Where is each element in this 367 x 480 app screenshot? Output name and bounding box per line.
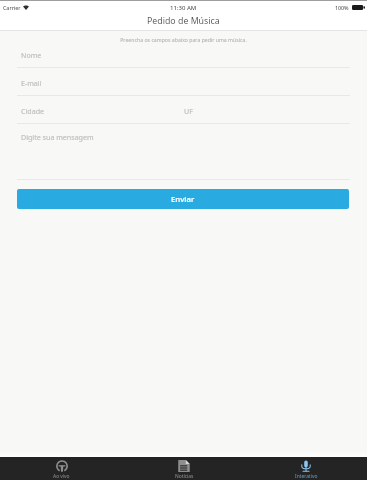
staticText: 11:30 AM — [170, 4, 197, 12]
staticText: E-mail — [21, 78, 42, 88]
staticText: Nome — [21, 50, 42, 60]
staticText: 100% — [335, 4, 349, 11]
staticText: Pedido de Música — [147, 15, 220, 27]
button[interactable]: Notícias — [123, 457, 245, 480]
button[interactable]: Ao vivo — [0, 457, 123, 480]
staticText: Ao vivo — [53, 473, 70, 480]
staticText: Notícias — [175, 473, 194, 480]
button[interactable]: Digite sua mensagem — [0, 125, 367, 179]
button[interactable]: Enviar — [17, 189, 349, 209]
staticText: Digite sua mensagem — [21, 132, 94, 142]
button[interactable]: Cidade — [0, 98, 183, 124]
staticText: UF — [184, 106, 193, 116]
button[interactable]: Nome — [0, 42, 367, 68]
button[interactable]: UF — [183, 98, 367, 124]
button[interactable]: Interativo — [245, 457, 367, 480]
staticText: Preencha os campos abaixo para pedir uma… — [120, 36, 247, 43]
staticText: Cidade — [21, 106, 45, 116]
staticText: Enviar — [171, 194, 195, 205]
staticText: Interativo — [295, 473, 318, 480]
button[interactable]: E-mail — [0, 70, 367, 96]
staticText: Carrier — [3, 4, 21, 11]
